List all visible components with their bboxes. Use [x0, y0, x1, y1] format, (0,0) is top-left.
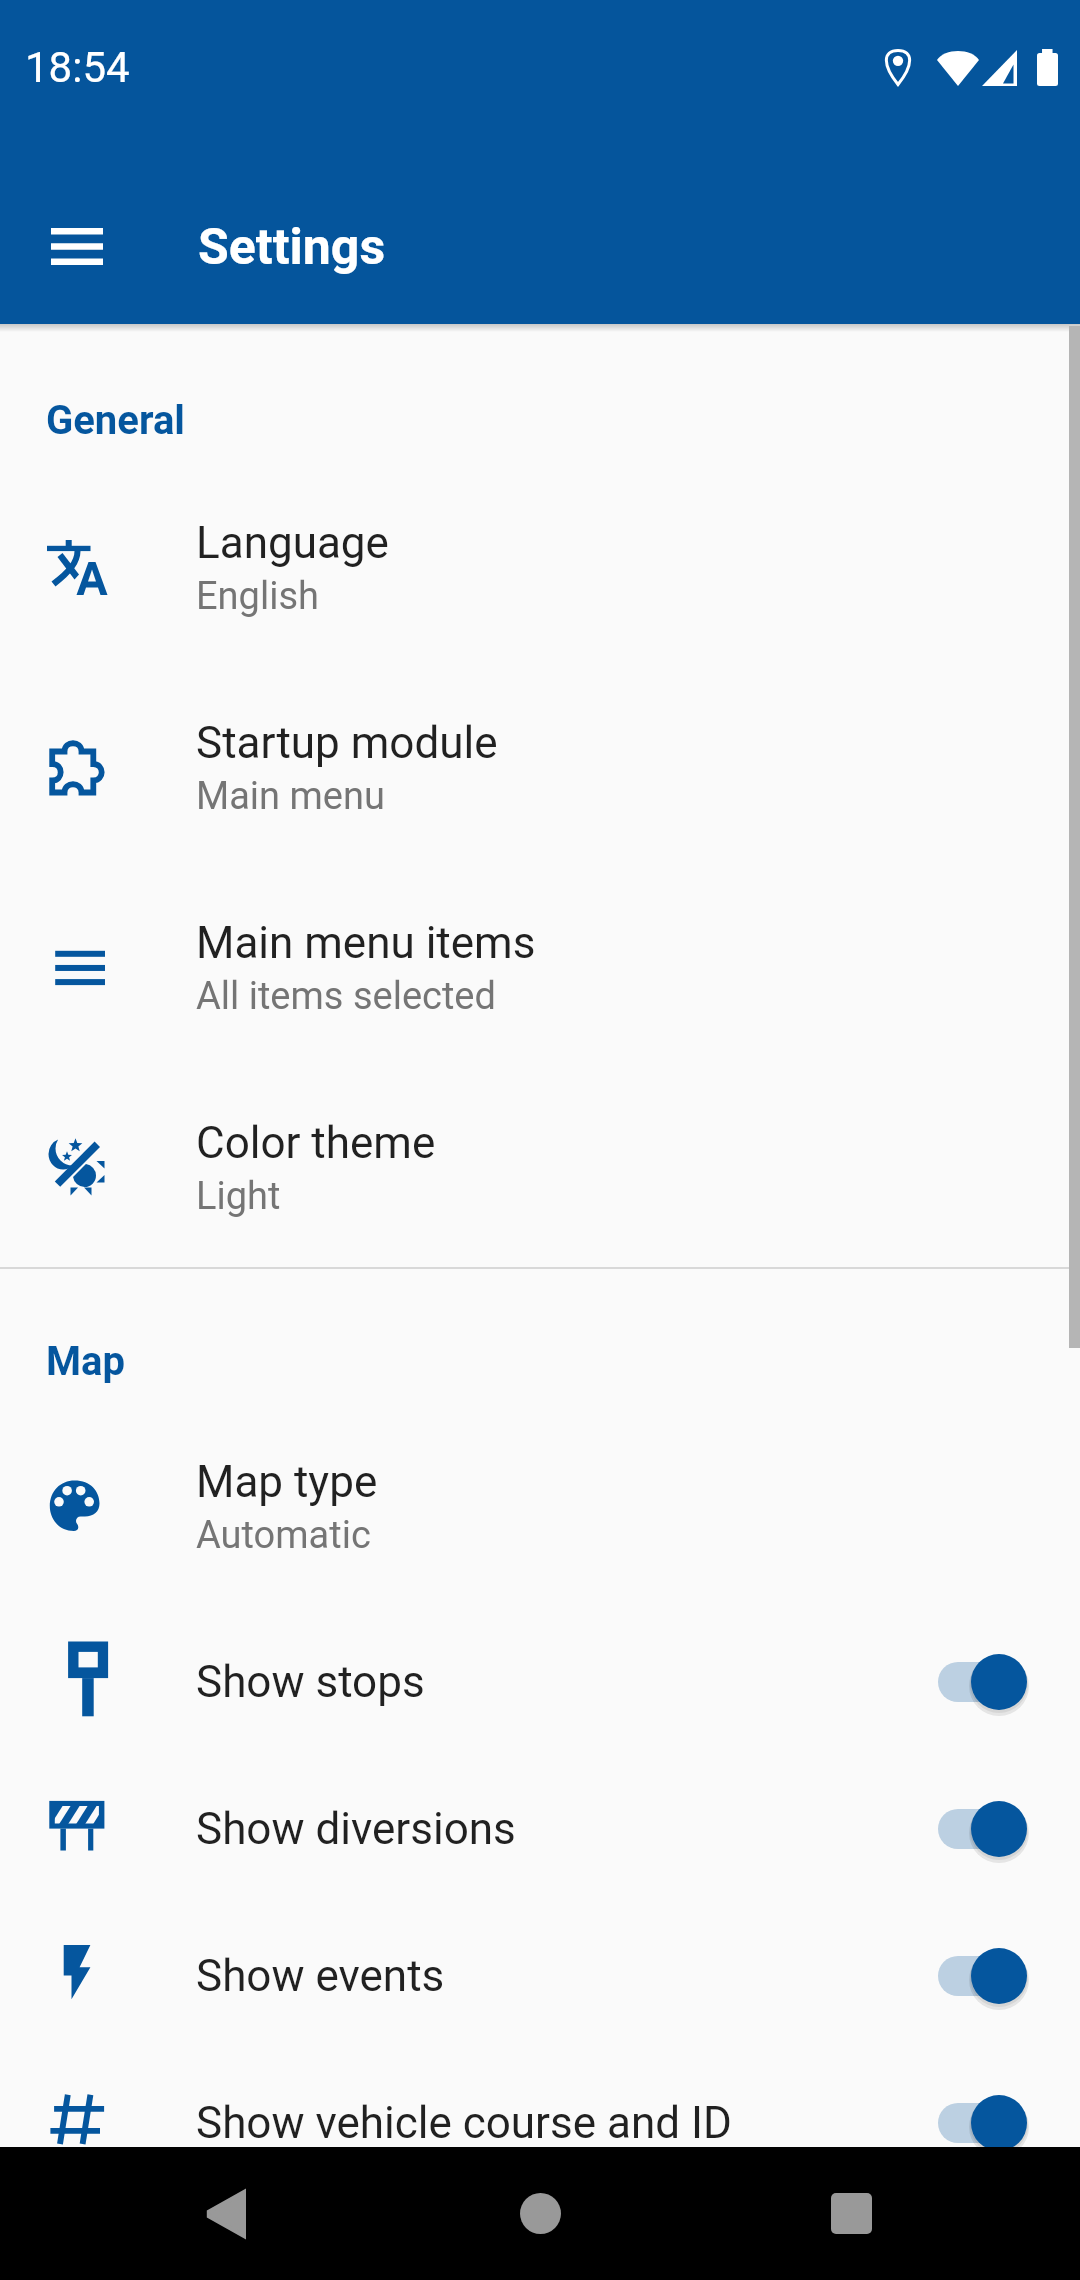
staticText: Show events — [196, 1950, 935, 2002]
staticText: Show diversions — [196, 1803, 935, 1855]
staticText: Show stops — [196, 1656, 935, 1708]
staticText: Show vehicle course and ID — [196, 2097, 935, 2149]
staticText: Main menu items — [196, 917, 536, 969]
button[interactable]: Show diversions — [0, 1755, 1080, 1902]
staticText: Color theme — [196, 1117, 436, 1169]
staticText: Settings — [198, 218, 386, 277]
button[interactable]: Color theme — [0, 1064, 1080, 1264]
staticText: Language — [196, 517, 389, 569]
staticText: All items selected — [196, 974, 496, 1019]
staticText: Automatic — [196, 1513, 371, 1558]
staticText: Light — [196, 1174, 281, 1219]
staticText: 18:54 — [25, 43, 130, 92]
button[interactable]: Open navigation menu — [29, 198, 125, 294]
button[interactable]: Language — [0, 464, 1080, 664]
staticText: Main menu — [196, 774, 385, 819]
staticText: Map type — [196, 1456, 378, 1508]
button[interactable]: Show vehicle course and ID — [0, 2049, 1080, 2196]
button[interactable]: Home — [480, 2147, 600, 2280]
button[interactable]: Startup module — [0, 664, 1080, 864]
button[interactable]: Map type — [0, 1403, 1080, 1603]
staticText: Startup module — [196, 717, 498, 769]
button[interactable]: Back — [166, 2147, 286, 2280]
button[interactable]: Show events — [0, 1902, 1080, 2049]
staticText: Map — [46, 1338, 126, 1385]
button[interactable]: Show stops — [0, 1608, 1080, 1755]
staticText: General — [46, 397, 185, 444]
staticText: English — [196, 574, 319, 619]
button[interactable]: Main menu items — [0, 864, 1080, 1064]
button[interactable]: Recent apps — [791, 2147, 911, 2280]
